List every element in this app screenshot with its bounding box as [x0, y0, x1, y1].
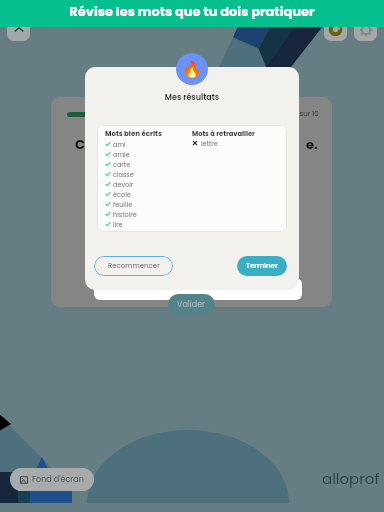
staticText: devoir	[113, 180, 134, 189]
button[interactable]: Collapse	[7, 18, 30, 41]
staticText: Mes résultats	[85, 92, 299, 103]
staticText: Cl	[75, 135, 89, 153]
button[interactable]: Fond d'écran	[10, 468, 94, 491]
staticText: lire	[113, 220, 123, 229]
staticText: 10 sur 10	[291, 109, 319, 119]
button[interactable]: Settings	[354, 18, 377, 41]
staticText: lettre	[201, 139, 218, 148]
staticText: carte	[113, 160, 131, 169]
staticText: Recommencer	[108, 261, 160, 271]
button[interactable]: Coins	[324, 18, 347, 41]
staticText: Révise les mots que tu dois pratiquer	[0, 2, 384, 20]
staticText: histoire	[113, 210, 137, 219]
staticText: Terminer	[246, 261, 278, 271]
staticText: Mots bien écrits	[105, 129, 162, 139]
staticText: alloprof	[322, 468, 380, 489]
staticText: classe	[113, 170, 134, 179]
staticText: feuille	[113, 200, 133, 209]
staticText: 🔥	[182, 60, 202, 79]
button[interactable]: Valider	[168, 294, 215, 315]
staticText: Mots à retravailler	[192, 129, 255, 138]
staticText: école	[113, 190, 131, 199]
staticText: e.	[306, 135, 318, 153]
staticText: Fond d'écran	[32, 474, 84, 485]
button[interactable]: Recommencer	[94, 256, 173, 276]
button[interactable]: Terminer	[237, 256, 287, 276]
staticText: Valider	[177, 299, 206, 310]
staticText: amie	[113, 150, 130, 159]
staticText: ami	[113, 140, 126, 149]
